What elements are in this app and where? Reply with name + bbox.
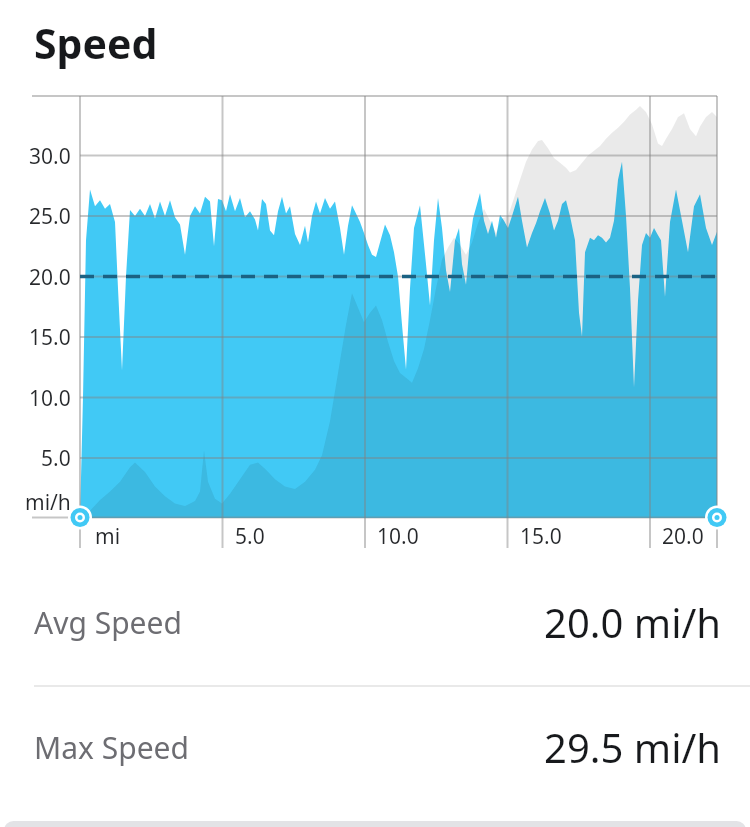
staticText: 30.0 [29,142,71,170]
staticText: 25.0 [29,202,71,230]
staticText: 20.0 mi/h [544,595,722,649]
staticText: 10.0 [29,384,71,412]
staticText: 5.0 [41,444,71,472]
staticText: 20.0 [29,263,71,291]
staticText: mi/h [25,488,71,516]
staticText: Avg Speed [34,602,182,643]
staticText: 15.0 [29,323,71,351]
staticText: 20.0 [662,522,704,550]
staticText: Max Speed [34,727,189,768]
staticText: 29.5 mi/h [544,720,722,774]
staticText: 15.0 [520,522,562,550]
staticText: mi [95,522,121,550]
staticText: Speed [34,15,158,71]
staticText: 10.0 [377,522,419,550]
staticText: 5.0 [235,522,265,550]
